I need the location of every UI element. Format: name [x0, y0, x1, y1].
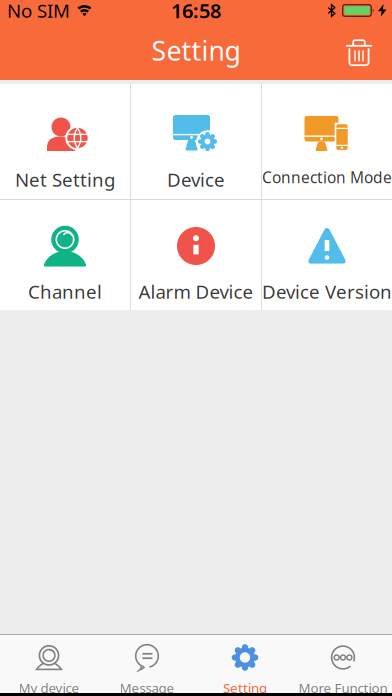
staticText: Net Setting [15, 167, 115, 192]
staticText: Connection Mode [262, 167, 392, 187]
staticText: Message [119, 679, 174, 696]
staticText: Setting [151, 33, 240, 68]
button[interactable]: Device Version [262, 200, 392, 310]
button[interactable]: Setting [196, 635, 294, 693]
button[interactable]: Alarm Device [131, 200, 261, 310]
staticText: Device [167, 167, 225, 192]
button[interactable]: Net Setting [0, 84, 130, 199]
button[interactable]: Delete [346, 34, 373, 67]
button[interactable]: Connection Mode [262, 84, 392, 199]
staticText: More Function [298, 679, 387, 696]
staticText: Setting [223, 679, 267, 696]
staticText: My device [18, 679, 79, 696]
staticText: Device Version [262, 279, 392, 304]
button[interactable]: More Function [294, 635, 392, 693]
button[interactable]: Channel [0, 200, 130, 310]
staticText: Channel [28, 279, 102, 304]
button[interactable]: Device [131, 84, 261, 199]
staticText: 16:58 [171, 0, 221, 24]
staticText: No SIM [7, 0, 70, 23]
staticText: Alarm Device [138, 279, 253, 304]
button[interactable]: Message [98, 635, 196, 693]
button[interactable]: My device [0, 635, 98, 693]
